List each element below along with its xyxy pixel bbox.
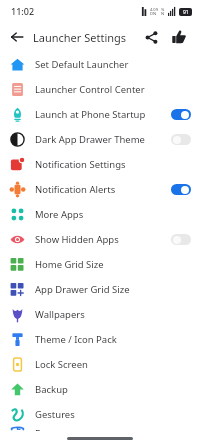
staticText: Launcher Settings [33, 30, 127, 45]
button[interactable]: Dark App Drawer Theme [0, 127, 200, 152]
staticText: Lock Screen [35, 358, 191, 371]
staticText: Wallpapers [35, 308, 191, 321]
button[interactable]: Theme / Icon Pack [0, 327, 200, 352]
button[interactable]: App Drawer Grid Size [0, 277, 200, 302]
button[interactable]: Share [138, 24, 164, 50]
button[interactable]: Gestures [0, 402, 200, 427]
button[interactable]: Lock Screen [0, 352, 200, 377]
button[interactable]: Back [4, 24, 30, 50]
staticText: Dark App Drawer Theme [35, 133, 171, 146]
staticText: 91 [183, 9, 189, 16]
staticText: Notification Settings [35, 158, 191, 171]
button[interactable]: Notification Alerts [0, 177, 200, 202]
staticText: App Drawer Grid Size [35, 283, 191, 296]
staticText: Gestures [35, 408, 191, 421]
button[interactable]: Backup [0, 377, 200, 402]
button[interactable]: Launcher Control Center [0, 77, 200, 102]
staticText: Launcher Control Center [35, 83, 191, 96]
button[interactable]: Home Grid Size [0, 252, 200, 277]
staticText: Show Hidden Apps [35, 233, 171, 246]
staticText: 4.09 DN [150, 7, 158, 16]
button[interactable]: Launch at Phone Startup [0, 102, 200, 127]
button[interactable]: Show Hidden Apps [0, 227, 200, 252]
button[interactable] [171, 234, 191, 245]
button[interactable]: Notification Settings [0, 152, 200, 177]
button[interactable] [171, 109, 191, 120]
button[interactable]: Wallpapers [0, 302, 200, 327]
staticText: % N [161, 7, 165, 16]
staticText: 11:02 [11, 5, 35, 17]
staticText: Home Grid Size [35, 258, 191, 271]
staticText: Restore [35, 427, 191, 431]
button[interactable]: Set Default Launcher [0, 52, 200, 77]
staticText: Theme / Icon Pack [35, 333, 191, 346]
staticText: Notification Alerts [35, 183, 171, 196]
button[interactable] [171, 184, 191, 195]
button[interactable]: Restore [0, 427, 200, 431]
staticText: Launch at Phone Startup [35, 108, 171, 121]
staticText: Set Default Launcher [35, 58, 191, 71]
button[interactable]: Rate app [166, 24, 192, 50]
button[interactable]: More Apps [0, 202, 200, 227]
staticText: Backup [35, 383, 191, 396]
button[interactable] [171, 134, 191, 145]
staticText: More Apps [35, 208, 191, 221]
